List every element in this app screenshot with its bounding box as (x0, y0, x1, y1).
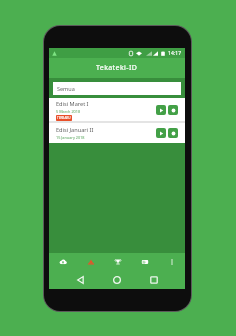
staticText: Edisi Januari II (56, 126, 94, 134)
staticText: 14:17 (168, 50, 182, 57)
button[interactable]: Ads (131, 253, 158, 271)
staticText: 5 March 2018 (56, 109, 81, 114)
button[interactable]: Cloud (49, 253, 77, 271)
button[interactable]: Download (168, 105, 178, 115)
button[interactable]: Play (156, 105, 166, 115)
button[interactable]: Download (168, 128, 178, 138)
button[interactable]: Back (74, 274, 86, 286)
button[interactable]: Edisi Maret I (49, 98, 185, 121)
staticText: TERBARU (57, 116, 71, 120)
button[interactable]: Play (156, 128, 166, 138)
staticText: Edisi Maret I (56, 100, 89, 108)
button[interactable]: Leaderboard (104, 253, 131, 271)
staticText: Tekateki-ID (96, 63, 138, 73)
button[interactable]: Alerts (77, 253, 104, 271)
staticText: Semua (57, 85, 75, 92)
button[interactable]: Home (111, 274, 123, 286)
staticText: 15 January 2018 (56, 135, 85, 140)
button[interactable]: Edisi Januari II (49, 123, 185, 143)
button[interactable]: Recents (148, 274, 160, 286)
button[interactable]: Semua (53, 82, 181, 95)
button[interactable]: More options (158, 253, 185, 271)
